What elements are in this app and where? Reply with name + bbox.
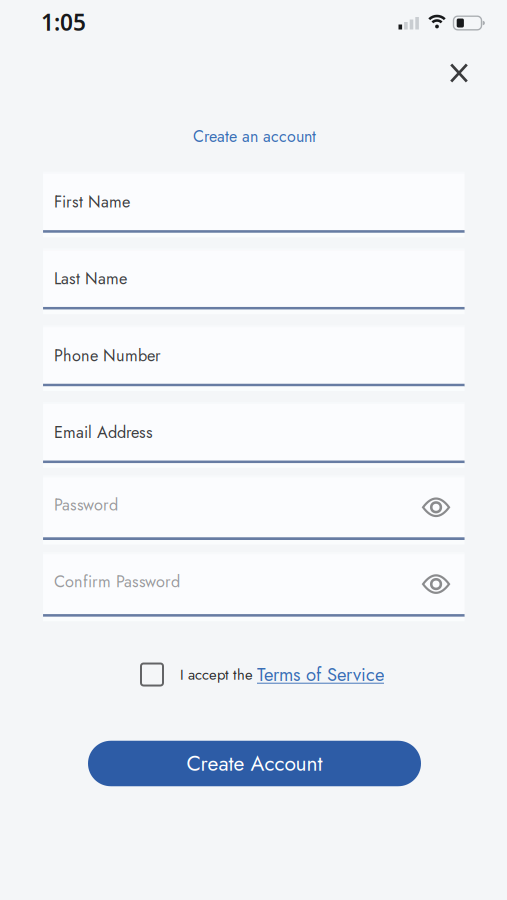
- button[interactable]: I accept the Terms of Service: [141, 663, 163, 685]
- button[interactable]: Show password: [423, 497, 450, 517]
- staticText: Email Address: [54, 420, 153, 444]
- staticText: Confirm Password: [54, 570, 180, 593]
- button[interactable]: Show password: [423, 574, 450, 594]
- staticText: Phone Number: [54, 344, 161, 367]
- staticText: Terms of Service: [257, 661, 384, 688]
- staticText: First Name: [54, 190, 130, 214]
- button[interactable]: Close: [437, 51, 481, 95]
- staticText: Create Account: [186, 748, 322, 779]
- button[interactable]: Terms of Service: [257, 661, 384, 688]
- staticText: 1:05: [41, 7, 86, 37]
- staticText: Last Name: [54, 267, 127, 290]
- staticText: Create an account: [193, 125, 316, 148]
- staticText: Password: [54, 493, 118, 516]
- staticText: I accept the: [180, 664, 253, 685]
- button[interactable]: Create Account: [88, 741, 421, 786]
